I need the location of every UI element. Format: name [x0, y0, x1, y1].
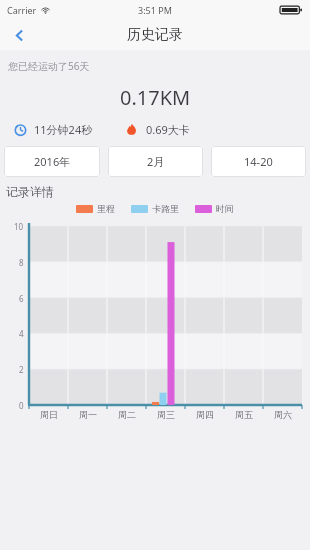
staticText: 0	[19, 400, 24, 411]
staticText: 周六	[274, 409, 292, 420]
staticText: 2	[19, 364, 24, 375]
staticText: 3:51 PM	[138, 4, 172, 16]
button[interactable]: Back	[0, 20, 38, 50]
staticText: 您已经运动了56天	[8, 59, 90, 73]
staticText: 14-20	[244, 154, 273, 169]
staticText: 0.69大卡	[146, 122, 190, 137]
staticText: 8	[19, 257, 24, 268]
button[interactable]: 2016年	[4, 146, 100, 177]
staticText: 周二	[118, 409, 136, 420]
staticText: 11分钟24秒	[34, 122, 93, 137]
staticText: 时间	[216, 203, 234, 214]
staticText: 周三	[157, 409, 175, 420]
staticText: 周四	[196, 409, 214, 420]
staticText: 0.17KM	[120, 84, 191, 111]
staticText: 周日	[40, 409, 58, 420]
staticText: 4	[19, 328, 24, 339]
button[interactable]: 14-20	[211, 146, 306, 177]
staticText: 6	[19, 293, 24, 304]
staticText: 2月	[147, 154, 165, 169]
staticText: 2016年	[34, 154, 71, 169]
staticText: 记录详情	[6, 184, 54, 199]
staticText: 周一	[79, 409, 97, 420]
staticText: 里程	[97, 203, 115, 214]
staticText: Carrier	[7, 4, 37, 16]
staticText: 周五	[235, 409, 253, 420]
staticText: 历史记录	[127, 26, 183, 44]
staticText: 卡路里	[152, 203, 179, 214]
staticText: 10	[14, 221, 24, 232]
button[interactable]: 2月	[108, 146, 203, 177]
